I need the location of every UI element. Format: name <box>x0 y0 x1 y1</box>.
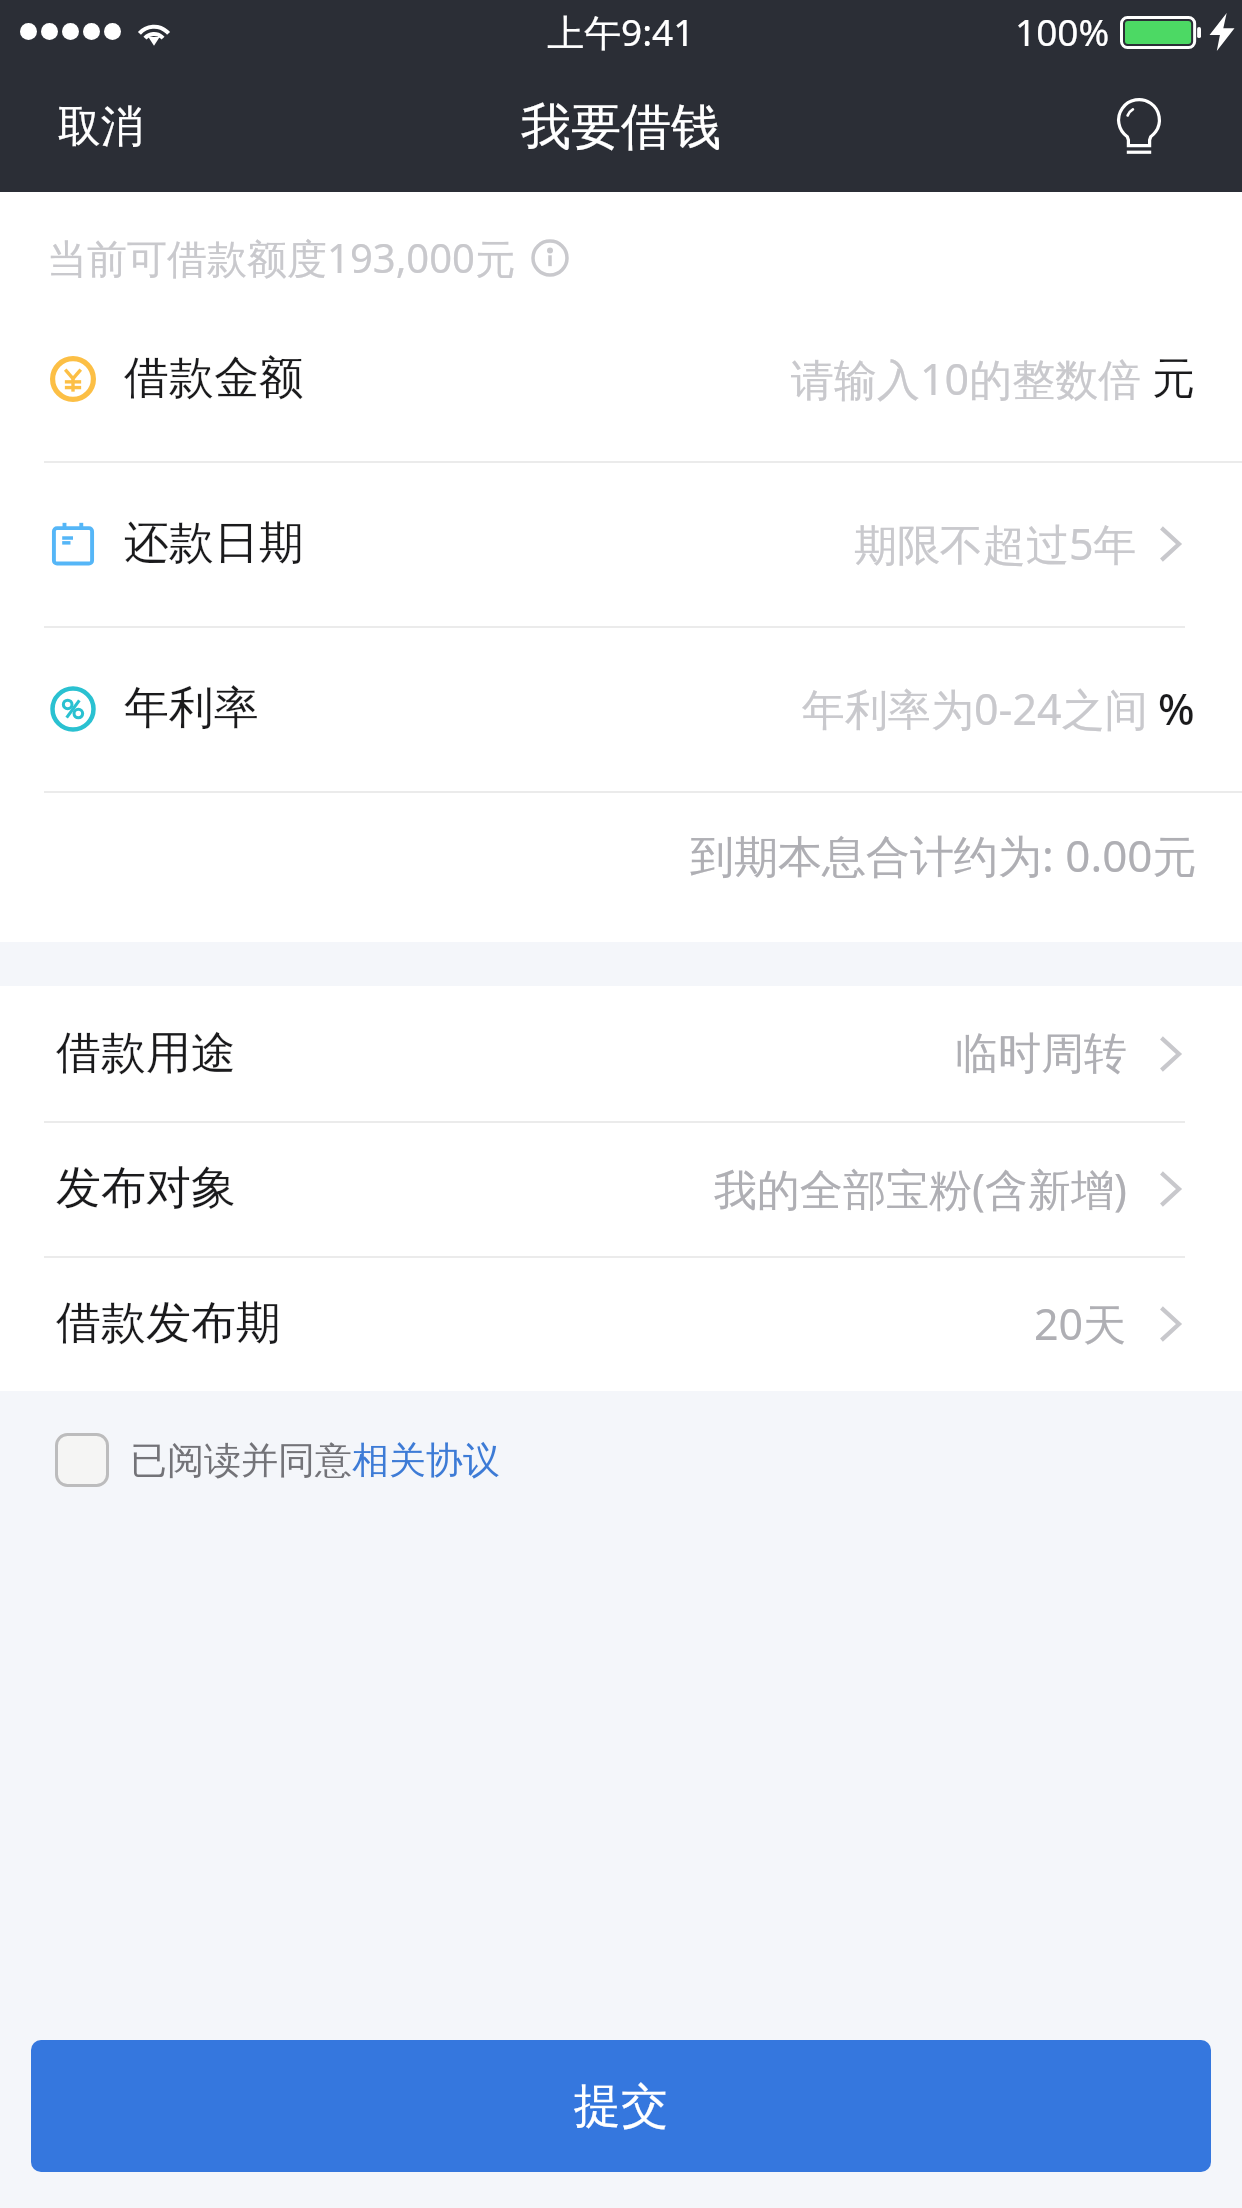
staticText: 年利率为0-24之间 <box>802 679 1148 738</box>
staticText: 我的全部宝粉(含新增) <box>714 1159 1127 1218</box>
staticText: 还款日期 <box>124 515 304 572</box>
staticText: 当前可借款额度193,000元 <box>47 230 515 285</box>
staticText: 提交 <box>574 2077 668 2136</box>
staticText: 借款发布期 <box>56 1295 281 1352</box>
staticText: % <box>1158 679 1195 738</box>
staticText: 元 <box>1152 352 1195 406</box>
button[interactable]: 借款发布期 <box>0 1256 1242 1391</box>
staticText: 上午9:41 <box>547 6 695 57</box>
staticText: 借款用途 <box>56 1025 236 1082</box>
button[interactable]: 提交 <box>31 2040 1211 2172</box>
button[interactable]: 取消 <box>0 78 202 184</box>
staticText: 100% <box>1015 6 1110 56</box>
staticText: 请输入10的整数倍 <box>791 349 1142 408</box>
button[interactable]: 借款金额 <box>0 296 1242 461</box>
button[interactable]: 借款用途 <box>0 986 1242 1121</box>
button[interactable]: 发布对象 <box>0 1121 1242 1256</box>
button[interactable]: 还款日期 <box>0 461 1242 626</box>
staticText: 20天 <box>1034 1294 1127 1353</box>
staticText: 借款金额 <box>124 350 304 407</box>
button[interactable]: 已阅读并同意 <box>0 1391 1242 1529</box>
staticText: 年利率 <box>124 680 259 737</box>
button[interactable]: 年利率 <box>0 626 1242 791</box>
staticText: 发布对象 <box>56 1160 236 1217</box>
staticText: 期限不超过5年 <box>854 514 1137 573</box>
staticText: 相关协议 <box>352 1437 500 1484</box>
staticText: 临时周转 <box>955 1027 1127 1081</box>
staticText: 已阅读并同意 <box>130 1437 352 1484</box>
staticText: 到期本息合计约为: 0.00元 <box>690 825 1197 885</box>
staticText: 我要借钱 <box>521 96 721 159</box>
button[interactable]: Tips <box>1081 84 1242 178</box>
staticText: 取消 <box>58 100 144 154</box>
